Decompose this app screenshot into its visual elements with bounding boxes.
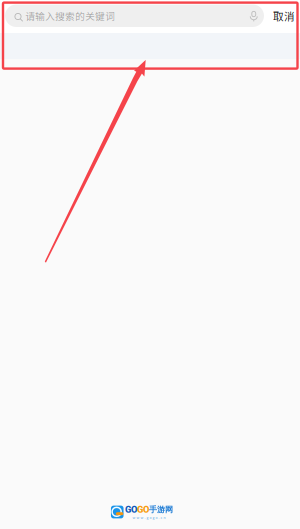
staticText: 请输入搜索的关键词 xyxy=(25,9,115,23)
staticText: 手游网 xyxy=(149,504,173,515)
staticText: 取消 xyxy=(273,8,295,23)
button[interactable]: 请输入搜索的关键词 xyxy=(5,4,264,27)
staticText: GO xyxy=(137,504,149,515)
staticText: w w w . g o g o . c n xyxy=(133,515,166,520)
button[interactable]: 取消 xyxy=(264,4,300,27)
staticText: GO xyxy=(125,504,137,515)
